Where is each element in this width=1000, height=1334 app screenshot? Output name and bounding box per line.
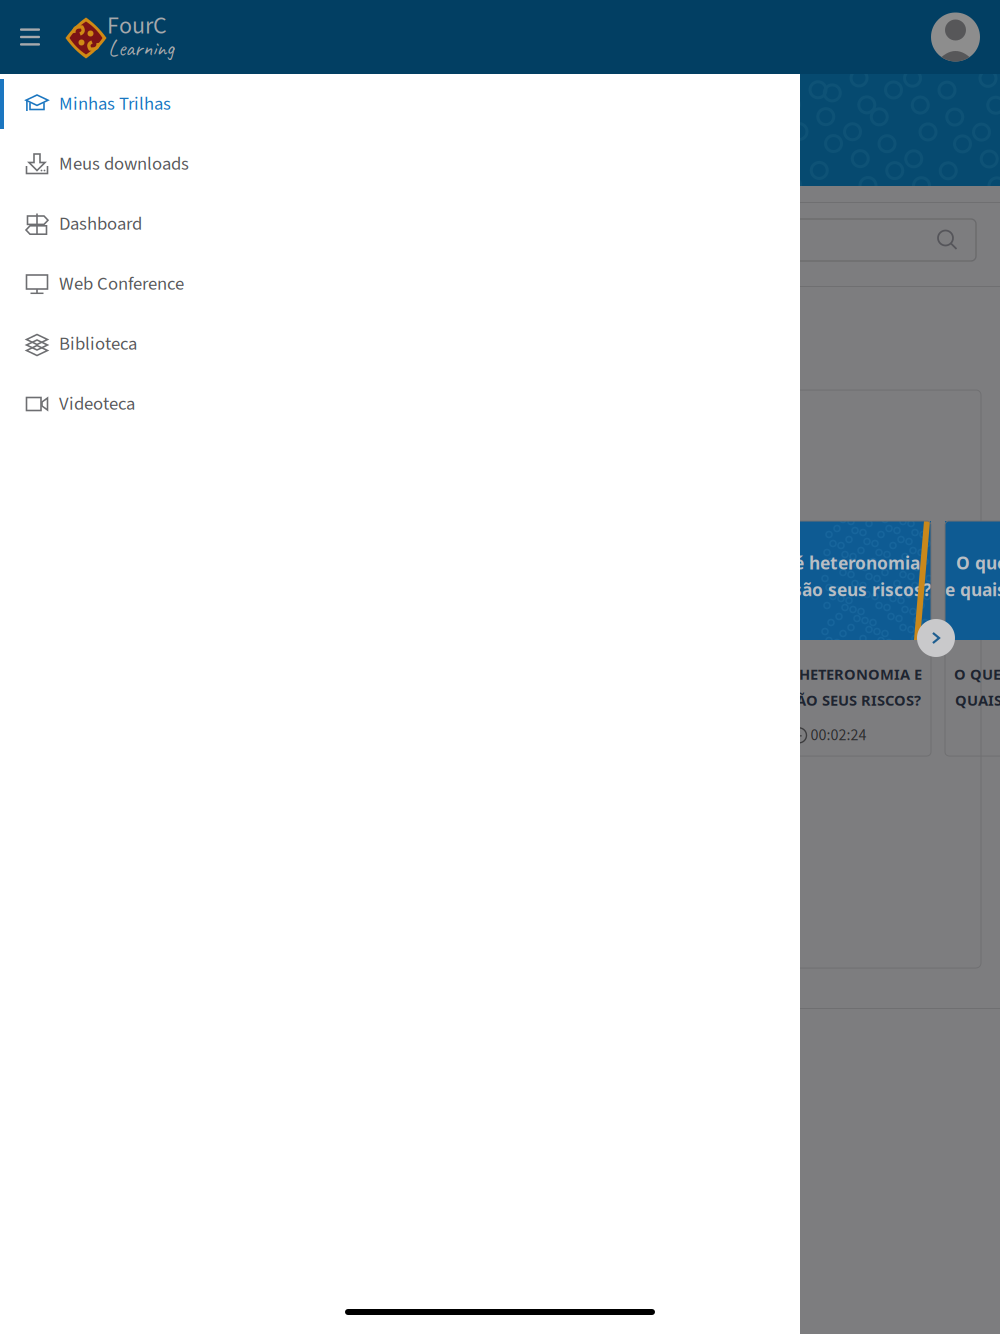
staticText: Learning xyxy=(108,34,174,62)
button[interactable]: Web Conference xyxy=(0,254,800,314)
staticText: QUAIS SÃO SEUS RISCOS? xyxy=(955,690,1000,710)
button[interactable]: Minhas Trilhas xyxy=(0,74,800,134)
staticText: e quais são seus riscos? xyxy=(727,578,931,601)
button[interactable]: Biblioteca xyxy=(0,314,800,374)
button[interactable]: Dashboard xyxy=(0,194,800,254)
staticText: Dashboard xyxy=(59,211,142,237)
button[interactable]: Next xyxy=(917,619,955,657)
staticText: e quais são seus riscos? xyxy=(945,578,1000,601)
button[interactable]: Videoteca xyxy=(0,374,800,434)
staticText: FourC xyxy=(107,9,167,43)
button[interactable]: Meus downloads xyxy=(0,134,800,194)
staticText: QUAIS SÃO SEUS RISCOS? xyxy=(737,690,921,710)
staticText: Videoteca xyxy=(59,391,135,417)
button[interactable]: Menu xyxy=(11,23,49,51)
staticText: O que é heteronomia xyxy=(738,551,920,575)
staticText: Web Conference xyxy=(59,271,184,297)
staticText: Minhas Trilhas xyxy=(59,91,171,117)
staticText: O QUE É HETERONOMIA E xyxy=(736,664,922,684)
staticText: Meus downloads xyxy=(59,151,189,177)
staticText: O que é heteronomia xyxy=(956,551,1000,575)
staticText: Busque aqui um conteúdo xyxy=(38,224,285,256)
staticText: O QUE É HETERONOMIA E xyxy=(954,664,1000,684)
staticText: Biblioteca xyxy=(59,331,137,357)
staticText: 00:02:24 xyxy=(810,724,866,747)
